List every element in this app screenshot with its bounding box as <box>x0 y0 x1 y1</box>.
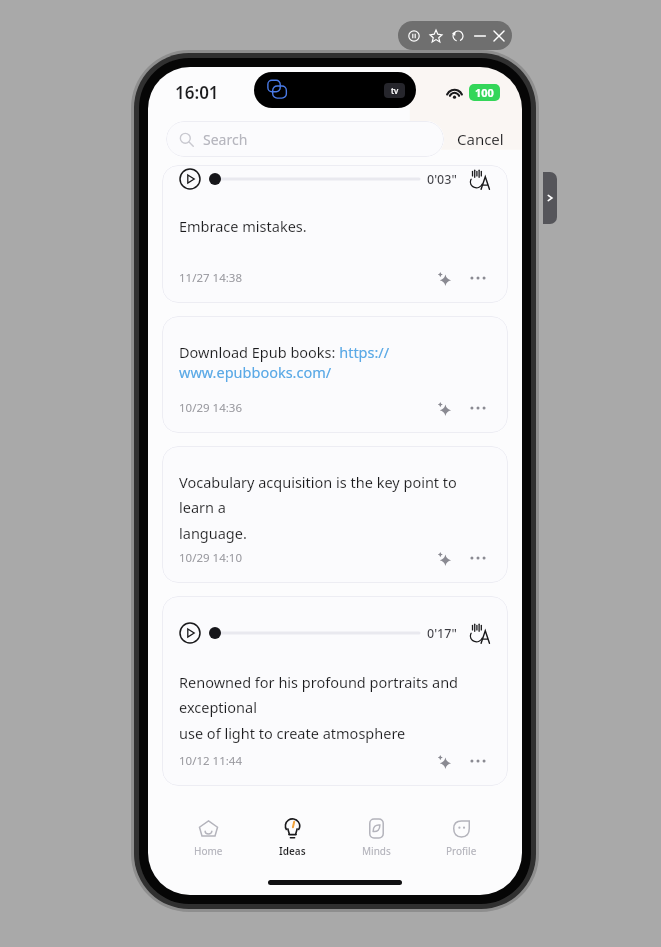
button[interactable]: Play <box>179 168 201 190</box>
staticText: Search <box>203 130 248 149</box>
button[interactable]: Transcribe to text <box>469 622 491 644</box>
staticText: Renowned for his profound portraits and … <box>179 672 491 744</box>
button[interactable]: Play <box>162 596 508 786</box>
button[interactable]: AI assist <box>431 395 457 421</box>
button[interactable]: Close <box>493 27 505 45</box>
button[interactable]: Transcribe to text <box>469 168 491 190</box>
staticText: tv <box>391 85 399 96</box>
button[interactable]: Rotate <box>449 27 467 45</box>
staticText: Ideas <box>279 844 306 858</box>
staticText: Download Epub books: https://www.epubboo… <box>179 342 491 382</box>
staticText: Cancel <box>457 129 504 149</box>
button[interactable]: More options <box>465 748 491 774</box>
button[interactable]: Play <box>162 165 508 303</box>
staticText: 0'17" <box>427 625 457 642</box>
button[interactable]: More options <box>465 265 491 291</box>
staticText: 16:01 <box>175 81 219 104</box>
staticText: Minds <box>362 844 391 858</box>
button[interactable]: Download Epub books: https://www.epubboo… <box>162 316 508 433</box>
button[interactable]: Vocabulary acquisition is the key point … <box>162 446 508 583</box>
staticText: Home <box>194 844 223 858</box>
staticText: 10/29 14:10 <box>179 550 242 566</box>
button[interactable]: Minimize <box>471 27 489 45</box>
staticText: 10/29 14:36 <box>179 400 242 416</box>
button[interactable]: AI assist <box>431 545 457 571</box>
button[interactable]: Ideas <box>250 807 334 869</box>
staticText: Profile <box>446 844 477 858</box>
button[interactable]: Expand panel <box>543 172 557 224</box>
staticText: 100 <box>475 85 494 100</box>
staticText: Vocabulary acquisition is the key point … <box>179 472 491 544</box>
button[interactable]: More options <box>465 545 491 571</box>
button[interactable]: AI assist <box>431 265 457 291</box>
staticText: Embrace mistakes. <box>179 216 307 236</box>
staticText: 0'03" <box>427 171 457 188</box>
button[interactable]: Cancel <box>444 123 506 155</box>
button[interactable]: More options <box>465 395 491 421</box>
button[interactable]: Home <box>166 807 250 869</box>
staticText: 11/27 14:38 <box>179 270 242 286</box>
button[interactable]: Play <box>179 622 201 644</box>
button[interactable]: Minds <box>334 807 419 869</box>
button[interactable]: AI assist <box>431 748 457 774</box>
button[interactable]: Search <box>166 121 444 157</box>
staticText: 10/12 11:44 <box>179 753 242 769</box>
button[interactable]: Pin <box>427 27 445 45</box>
button[interactable]: Profile <box>419 807 504 869</box>
button[interactable]: Pause <box>405 27 423 45</box>
